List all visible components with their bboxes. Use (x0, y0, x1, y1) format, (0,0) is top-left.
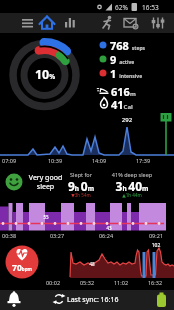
staticText: 10% (25, 66, 65, 83)
staticText: 102 (149, 242, 163, 249)
staticText: 48 (86, 261, 98, 267)
button[interactable] (40, 240, 174, 288)
button[interactable] (8, 40, 80, 108)
staticText: 62% (115, 3, 128, 12)
button[interactable] (98, 13, 118, 33)
staticText: ▲1h 44m (104, 192, 160, 198)
staticText: 00:38 (2, 232, 17, 239)
staticText: ▼3h 54m (64, 192, 98, 198)
staticText: 70bpm (7, 262, 37, 274)
staticText: 41Cal (111, 97, 133, 112)
staticText: 16:53 (142, 3, 159, 12)
button[interactable] (4, 245, 40, 281)
staticText: 03:27 (48, 232, 66, 239)
staticText: Last sync: 16:16 (67, 295, 119, 305)
staticText: 616m (111, 84, 136, 99)
button[interactable] (148, 13, 168, 33)
button[interactable] (121, 13, 141, 33)
staticText: Slept for (64, 171, 98, 178)
staticText: 17:39 (134, 157, 152, 164)
button[interactable] (18, 13, 40, 33)
button[interactable] (0, 290, 174, 310)
staticText: 06:24 (97, 232, 115, 239)
staticText: 07:09 (2, 157, 17, 164)
staticText: 43 (103, 225, 115, 231)
staticText: 09:21 (147, 232, 165, 239)
button[interactable] (38, 13, 58, 33)
staticText: 16:32 (146, 279, 164, 286)
staticText: 10:39 (46, 157, 64, 164)
staticText: Very good (27, 173, 64, 183)
staticText: 05:32 (78, 279, 96, 286)
staticText: 41% deep sleep (104, 171, 160, 178)
button[interactable] (96, 36, 172, 108)
staticText: 768 steps (110, 38, 146, 53)
staticText: 55 (40, 214, 52, 220)
staticText: 00:02 (44, 279, 62, 286)
staticText: 292 (119, 116, 135, 124)
staticText: 1 intensive (110, 66, 143, 81)
staticText: 14:09 (90, 157, 108, 164)
staticText: 9 active (110, 52, 135, 67)
button[interactable] (61, 13, 81, 33)
staticText: 3h 40m (104, 178, 160, 194)
staticText: sleep (27, 182, 64, 192)
staticText: 9h 0m (64, 178, 98, 194)
button[interactable] (0, 170, 174, 238)
button[interactable] (0, 112, 174, 168)
staticText: 11:02 (112, 279, 130, 286)
